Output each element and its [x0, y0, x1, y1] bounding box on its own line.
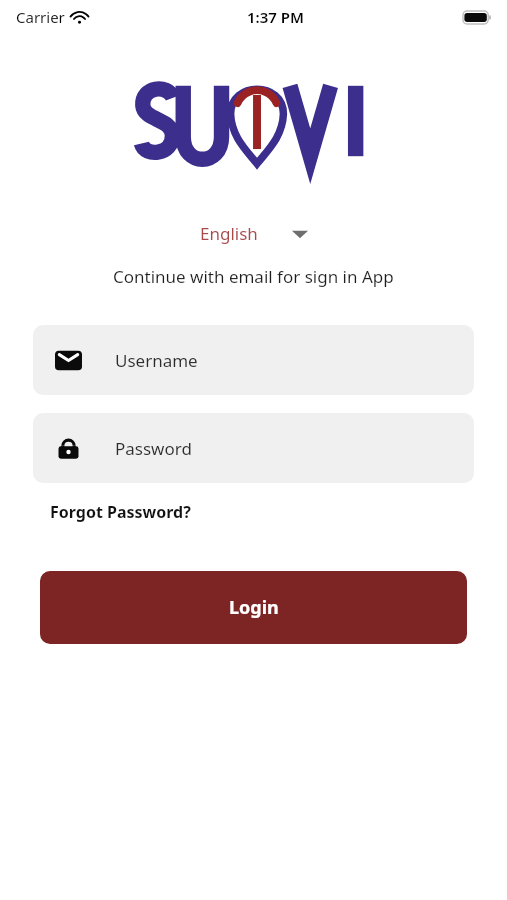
staticText: 1:37 PM: [247, 7, 304, 27]
button[interactable]: Forgot Password?: [46, 497, 195, 527]
button[interactable]: Password: [33, 413, 474, 483]
button[interactable]: Login: [40, 571, 467, 644]
staticText: Login: [229, 595, 279, 620]
button[interactable]: English: [192, 218, 316, 249]
staticText: Continue with email for sign in App: [113, 265, 394, 288]
button[interactable]: Username: [33, 325, 474, 395]
staticText: Carrier: [16, 7, 65, 27]
staticText: Forgot Password?: [50, 501, 191, 523]
staticText: Password: [115, 437, 192, 460]
staticText: English: [200, 222, 258, 245]
staticText: Username: [115, 349, 198, 372]
